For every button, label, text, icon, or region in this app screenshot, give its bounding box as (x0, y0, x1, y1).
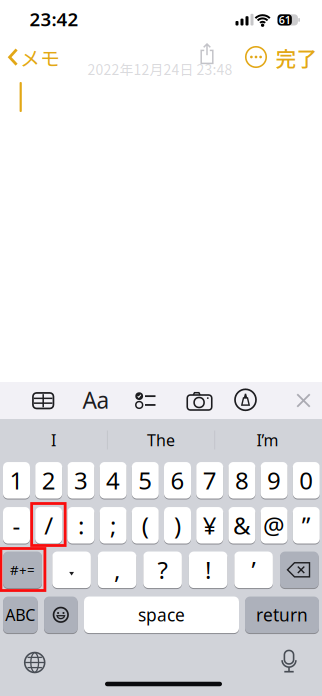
button[interactable]: 3 (67, 462, 94, 499)
button[interactable]: ¥ (196, 507, 223, 543)
staticText: I’m (256, 429, 278, 451)
button[interactable]: @ (261, 507, 288, 543)
staticText: space (138, 603, 185, 626)
button[interactable]: space (84, 596, 239, 633)
staticText: 23:42 (29, 7, 78, 31)
button[interactable]: Share (196, 43, 218, 64)
staticText: メモ (20, 43, 60, 72)
staticText: 2022年12月24日 23:48 (87, 59, 232, 79)
staticText: @ (263, 509, 285, 541)
button[interactable]: Dictate (280, 650, 297, 674)
staticText: : (78, 509, 84, 541)
staticText: 完了 (275, 42, 317, 72)
button[interactable]: ABC (3, 596, 38, 633)
staticText: , (114, 554, 120, 586)
staticText: return (256, 603, 308, 626)
button[interactable]: Emoji (44, 596, 77, 633)
staticText: 7 (203, 464, 217, 496)
button[interactable]: Checklist (135, 392, 156, 409)
staticText: 8 (235, 464, 249, 496)
staticText: I (51, 429, 56, 451)
staticText: 2 (42, 464, 56, 496)
button[interactable]: #+= (3, 551, 42, 588)
staticText: 61 (279, 13, 291, 27)
button[interactable]: Dismiss (296, 393, 311, 408)
staticText: ; (110, 509, 116, 541)
button[interactable]: 4 (100, 462, 127, 499)
staticText: ABC (5, 604, 35, 625)
button[interactable]: 0 (293, 462, 320, 499)
button[interactable]: ; (100, 507, 127, 543)
button[interactable]: Markup (235, 389, 257, 411)
button[interactable]: 1 (3, 462, 30, 499)
button[interactable]: 6 (164, 462, 191, 499)
button[interactable]: , (98, 551, 136, 588)
staticText: ( (142, 509, 149, 541)
button[interactable]: メモ (3, 43, 61, 69)
button[interactable]: I (3, 425, 103, 455)
button[interactable]: ’ (234, 551, 273, 588)
button[interactable]: 5 (132, 462, 159, 499)
button[interactable]: 9 (261, 462, 288, 499)
staticText: #+= (10, 561, 35, 579)
staticText: & (233, 509, 251, 541)
staticText: ’ (252, 554, 256, 586)
staticText: 9 (267, 464, 281, 496)
button[interactable]: Camera (186, 391, 212, 410)
button[interactable]: ! (189, 551, 227, 588)
button[interactable]: . (52, 551, 91, 588)
button[interactable]: ? (143, 551, 182, 588)
staticText: ? (158, 554, 168, 586)
button[interactable]: : (67, 507, 94, 543)
button[interactable]: 2 (35, 462, 62, 499)
staticText: 6 (170, 464, 184, 496)
staticText: Aa (82, 385, 109, 415)
staticText: ! (205, 554, 211, 586)
button[interactable]: 7 (196, 462, 223, 499)
staticText: / (44, 509, 53, 541)
staticText: 3 (74, 464, 88, 496)
button[interactable]: & (228, 507, 255, 543)
button[interactable]: Delete (280, 551, 319, 588)
button[interactable]: 完了 (275, 42, 317, 72)
staticText: ¥ (203, 509, 217, 541)
button[interactable]: Aa (82, 385, 109, 415)
button[interactable]: 8 (228, 462, 255, 499)
staticText: 4 (106, 464, 120, 496)
button[interactable]: ( (132, 507, 159, 543)
staticText: The (147, 429, 175, 451)
button[interactable]: Insert table (31, 391, 55, 411)
button[interactable]: ” (293, 507, 320, 543)
button[interactable]: I’m (217, 425, 317, 455)
button[interactable]: Next keyboard (24, 651, 46, 673)
button[interactable]: / (35, 507, 62, 543)
staticText: 5 (138, 464, 152, 496)
button[interactable]: More (245, 46, 267, 68)
staticText: - (12, 509, 20, 541)
button[interactable]: - (3, 507, 30, 543)
button[interactable]: The (111, 425, 211, 455)
staticText: ” (302, 509, 311, 541)
staticText: 1 (9, 464, 23, 496)
button[interactable]: return (245, 596, 319, 633)
staticText: 0 (299, 464, 313, 496)
button[interactable]: ) (164, 507, 191, 543)
staticText: ) (174, 509, 181, 541)
